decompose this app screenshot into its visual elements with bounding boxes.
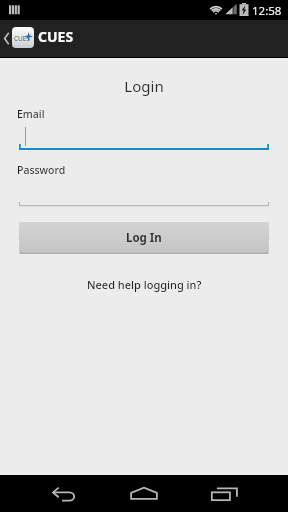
button[interactable]: Home [112, 475, 176, 512]
staticText: Password [17, 163, 66, 177]
staticText: CUES [38, 27, 74, 46]
button[interactable]: Log In [19, 222, 269, 254]
staticText: CUES [14, 34, 31, 43]
button[interactable]: Recent apps [192, 475, 256, 512]
staticText: Login [0, 76, 288, 96]
button[interactable]: Need help logging in? [81, 274, 208, 295]
button[interactable]: Navigate up [0, 20, 12, 57]
staticText: 12:58 [252, 3, 282, 19]
staticText: Need help logging in? [87, 277, 202, 292]
staticText: Log In [126, 230, 162, 246]
staticText: Email [17, 107, 45, 121]
button[interactable]: Back [32, 475, 96, 512]
